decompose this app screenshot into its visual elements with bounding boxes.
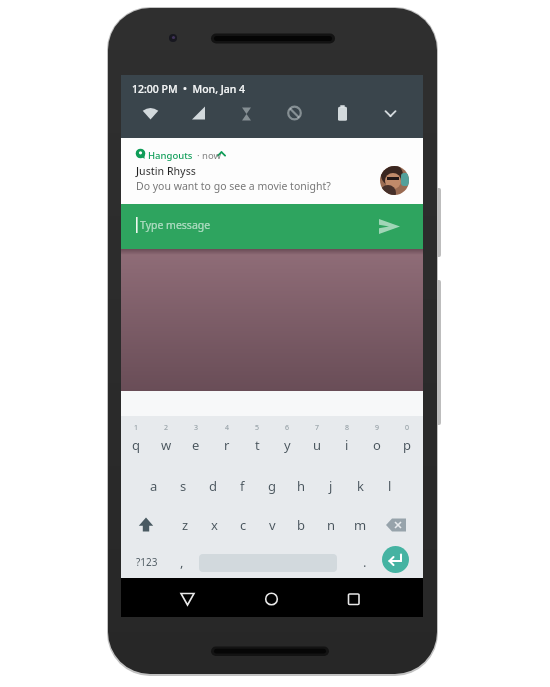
staticText: 2 <box>164 423 169 433</box>
button[interactable] <box>380 166 409 195</box>
staticText: p <box>403 436 411 454</box>
staticText: Hangouts <box>148 149 193 162</box>
staticText: e <box>192 436 200 454</box>
staticText: z <box>182 516 189 534</box>
staticText: w <box>161 436 172 454</box>
staticText: , <box>180 553 184 571</box>
staticText: t <box>255 436 260 454</box>
staticText: i <box>345 436 349 454</box>
staticText: 0 <box>405 423 410 433</box>
staticText: m <box>354 516 367 534</box>
staticText: j <box>329 477 333 495</box>
staticText: 6 <box>285 423 290 433</box>
button[interactable] <box>382 511 410 539</box>
staticText: 7 <box>315 423 320 433</box>
button[interactable] <box>257 585 286 613</box>
staticText: s <box>180 477 187 495</box>
staticText: 9 <box>375 423 380 433</box>
staticText: x <box>211 516 218 534</box>
button[interactable] <box>173 585 202 613</box>
staticText: a <box>150 477 158 495</box>
button[interactable] <box>132 511 160 539</box>
staticText: 8 <box>345 423 350 433</box>
staticText: Do you want to go see a movie tonight? <box>136 179 331 193</box>
staticText: h <box>297 477 306 495</box>
staticText: g <box>268 477 276 495</box>
staticText: y <box>284 436 291 454</box>
staticText: Justin Rhyss <box>136 164 196 178</box>
staticText: ?123 <box>136 555 158 569</box>
staticText: l <box>388 477 392 495</box>
staticText: 3 <box>194 423 199 433</box>
staticText: v <box>269 516 276 534</box>
button[interactable] <box>382 546 409 573</box>
staticText: 12:00 PM • Mon, Jan 4 <box>132 82 246 96</box>
staticText: f <box>240 477 245 495</box>
button[interactable]: Type message <box>121 204 423 249</box>
staticText: r <box>224 436 230 454</box>
staticText: n <box>327 516 336 534</box>
staticText: c <box>240 516 247 534</box>
staticText: 1 <box>134 423 139 433</box>
staticText: 4 <box>225 423 230 433</box>
staticText: . <box>363 553 367 571</box>
button[interactable] <box>339 585 368 613</box>
staticText: · now <box>197 149 221 162</box>
staticText: 5 <box>255 423 260 433</box>
staticText: o <box>373 436 381 454</box>
staticText: u <box>313 436 322 454</box>
staticText: b <box>297 516 305 534</box>
staticText: q <box>132 436 140 454</box>
staticText: k <box>357 477 364 495</box>
staticText: d <box>209 477 217 495</box>
button[interactable]: Hangouts <box>121 138 423 204</box>
staticText: Type message <box>140 218 211 232</box>
